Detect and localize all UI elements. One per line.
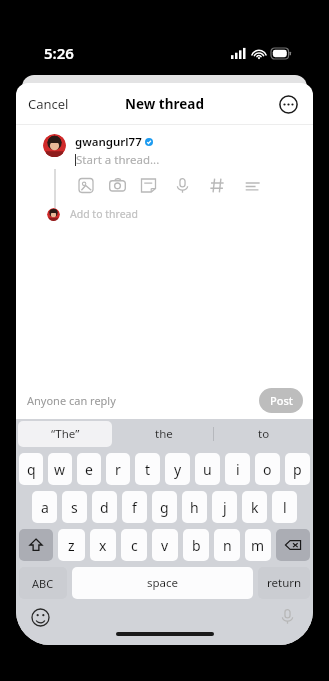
button[interactable]: Poll (241, 174, 263, 196)
button[interactable]: Anyone can reply (27, 393, 116, 408)
staticText: m (251, 536, 265, 555)
button[interactable]: g (152, 491, 177, 523)
button[interactable]: p (285, 453, 310, 485)
button[interactable]: s (62, 491, 87, 523)
staticText: e (85, 460, 93, 479)
staticText: k (251, 498, 259, 517)
staticText: n (223, 536, 232, 555)
button[interactable]: space (72, 567, 253, 599)
button[interactable]: t (135, 453, 160, 485)
staticText: f (132, 498, 137, 517)
button[interactable]: Tag (206, 174, 228, 196)
staticText: 5:26 (44, 43, 74, 63)
button[interactable]: r (106, 453, 130, 485)
button[interactable]: return (258, 567, 310, 599)
button[interactable]: d (92, 491, 117, 523)
staticText: to (258, 426, 270, 442)
staticText: x (99, 536, 107, 555)
staticText: l (283, 498, 287, 517)
button[interactable]: Dictation (275, 604, 299, 628)
button[interactable]: Camera (106, 174, 128, 196)
button[interactable]: Photo (75, 174, 97, 196)
staticText: h (190, 498, 199, 517)
staticText: p (293, 460, 302, 479)
button[interactable]: the (114, 419, 213, 449)
staticText: j (223, 498, 227, 517)
staticText: g (160, 498, 169, 517)
staticText: w (54, 460, 66, 479)
button[interactable]: to (214, 419, 313, 449)
staticText: r (115, 460, 121, 479)
staticText: u (203, 460, 212, 479)
button[interactable]: Backspace (276, 529, 310, 561)
staticText: New thread (125, 95, 204, 113)
button[interactable]: u (195, 453, 220, 485)
staticText: o (263, 460, 272, 479)
button[interactable]: v (152, 529, 178, 561)
button[interactable]: Cancel (28, 95, 69, 113)
staticText: Start a thread... (76, 152, 160, 168)
button[interactable]: j (212, 491, 237, 523)
staticText: i (236, 460, 240, 479)
staticText: Add to thread (70, 207, 138, 221)
button[interactable]: e (77, 453, 101, 485)
staticText: y (174, 460, 182, 479)
button[interactable]: w (48, 453, 72, 485)
staticText: d (100, 498, 109, 517)
staticText: z (68, 536, 75, 555)
staticText: “The” (51, 426, 80, 442)
button[interactable]: ABC (19, 567, 67, 599)
staticText: s (71, 498, 78, 517)
button[interactable]: z (58, 529, 85, 561)
staticText: ABC (32, 576, 54, 591)
button[interactable]: o (255, 453, 280, 485)
button[interactable]: Audio (171, 174, 193, 196)
button[interactable]: y (165, 453, 190, 485)
button[interactable]: GIF (137, 174, 159, 196)
staticText: space (147, 575, 179, 591)
staticText: the (155, 426, 173, 442)
button[interactable]: Emoji (28, 605, 52, 629)
button[interactable]: i (225, 453, 250, 485)
button[interactable]: x (90, 529, 116, 561)
button[interactable]: a (32, 491, 57, 523)
staticText: gwangurl77 (75, 134, 142, 150)
staticText: t (145, 460, 151, 479)
button[interactable]: f (122, 491, 147, 523)
button[interactable]: h (182, 491, 207, 523)
button[interactable]: c (121, 529, 147, 561)
staticText: b (192, 536, 201, 555)
staticText: return (267, 575, 302, 591)
button[interactable]: b (183, 529, 209, 561)
button[interactable]: n (214, 529, 240, 561)
staticText: q (27, 460, 36, 479)
button[interactable]: Add to thread (47, 207, 313, 221)
button[interactable]: “The” (18, 421, 112, 447)
button[interactable]: m (245, 529, 271, 561)
staticText: a (41, 498, 49, 517)
button[interactable]: l (272, 491, 297, 523)
staticText: c (131, 536, 138, 555)
button[interactable]: k (242, 491, 267, 523)
button[interactable]: Shift (19, 529, 53, 561)
staticText: Post (270, 393, 293, 408)
button[interactable]: q (19, 453, 43, 485)
button[interactable]: Post (259, 388, 303, 413)
button[interactable]: More options (275, 91, 301, 117)
staticText: v (161, 536, 169, 555)
